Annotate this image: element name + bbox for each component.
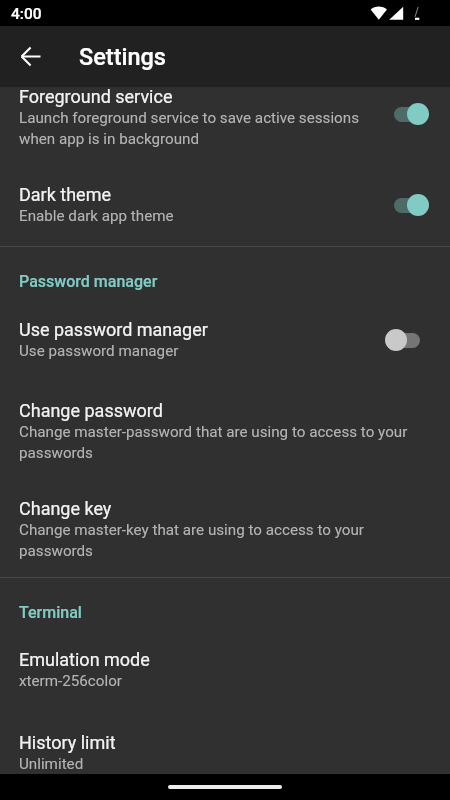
button[interactable]: Back (0, 26, 61, 87)
staticText: Change password (19, 400, 163, 421)
staticText: Dark theme (19, 184, 111, 205)
button[interactable]: Foreground service (0, 68, 450, 166)
staticText: History limit (19, 732, 116, 753)
staticText: Password manager (19, 272, 158, 291)
button[interactable]: Change key (0, 480, 450, 577)
staticText: Settings (79, 43, 167, 71)
staticText: Use password manager (19, 319, 208, 340)
button[interactable]: Use password manager (0, 301, 450, 382)
staticText: Use password manager (19, 342, 179, 360)
staticText: Enable dark app theme (19, 207, 174, 225)
staticText: Change master-password that are using to… (19, 423, 429, 461)
staticText: Launch foreground service to save active… (19, 109, 377, 147)
staticText: Change key (19, 498, 112, 519)
staticText: 4:00 (11, 5, 42, 23)
button[interactable]: Dark theme (0, 166, 450, 246)
button[interactable]: Emulation mode (0, 631, 450, 714)
staticText: Unlimited (19, 755, 84, 773)
button[interactable]: History limit (0, 714, 450, 790)
staticText: xterm-256color (19, 672, 122, 690)
staticText: Change master-key that are using to acce… (19, 521, 429, 559)
staticText: Foreground service (19, 86, 173, 107)
button[interactable]: Change password (0, 382, 450, 480)
staticText: Emulation mode (19, 649, 150, 670)
staticText: Terminal (19, 603, 82, 622)
